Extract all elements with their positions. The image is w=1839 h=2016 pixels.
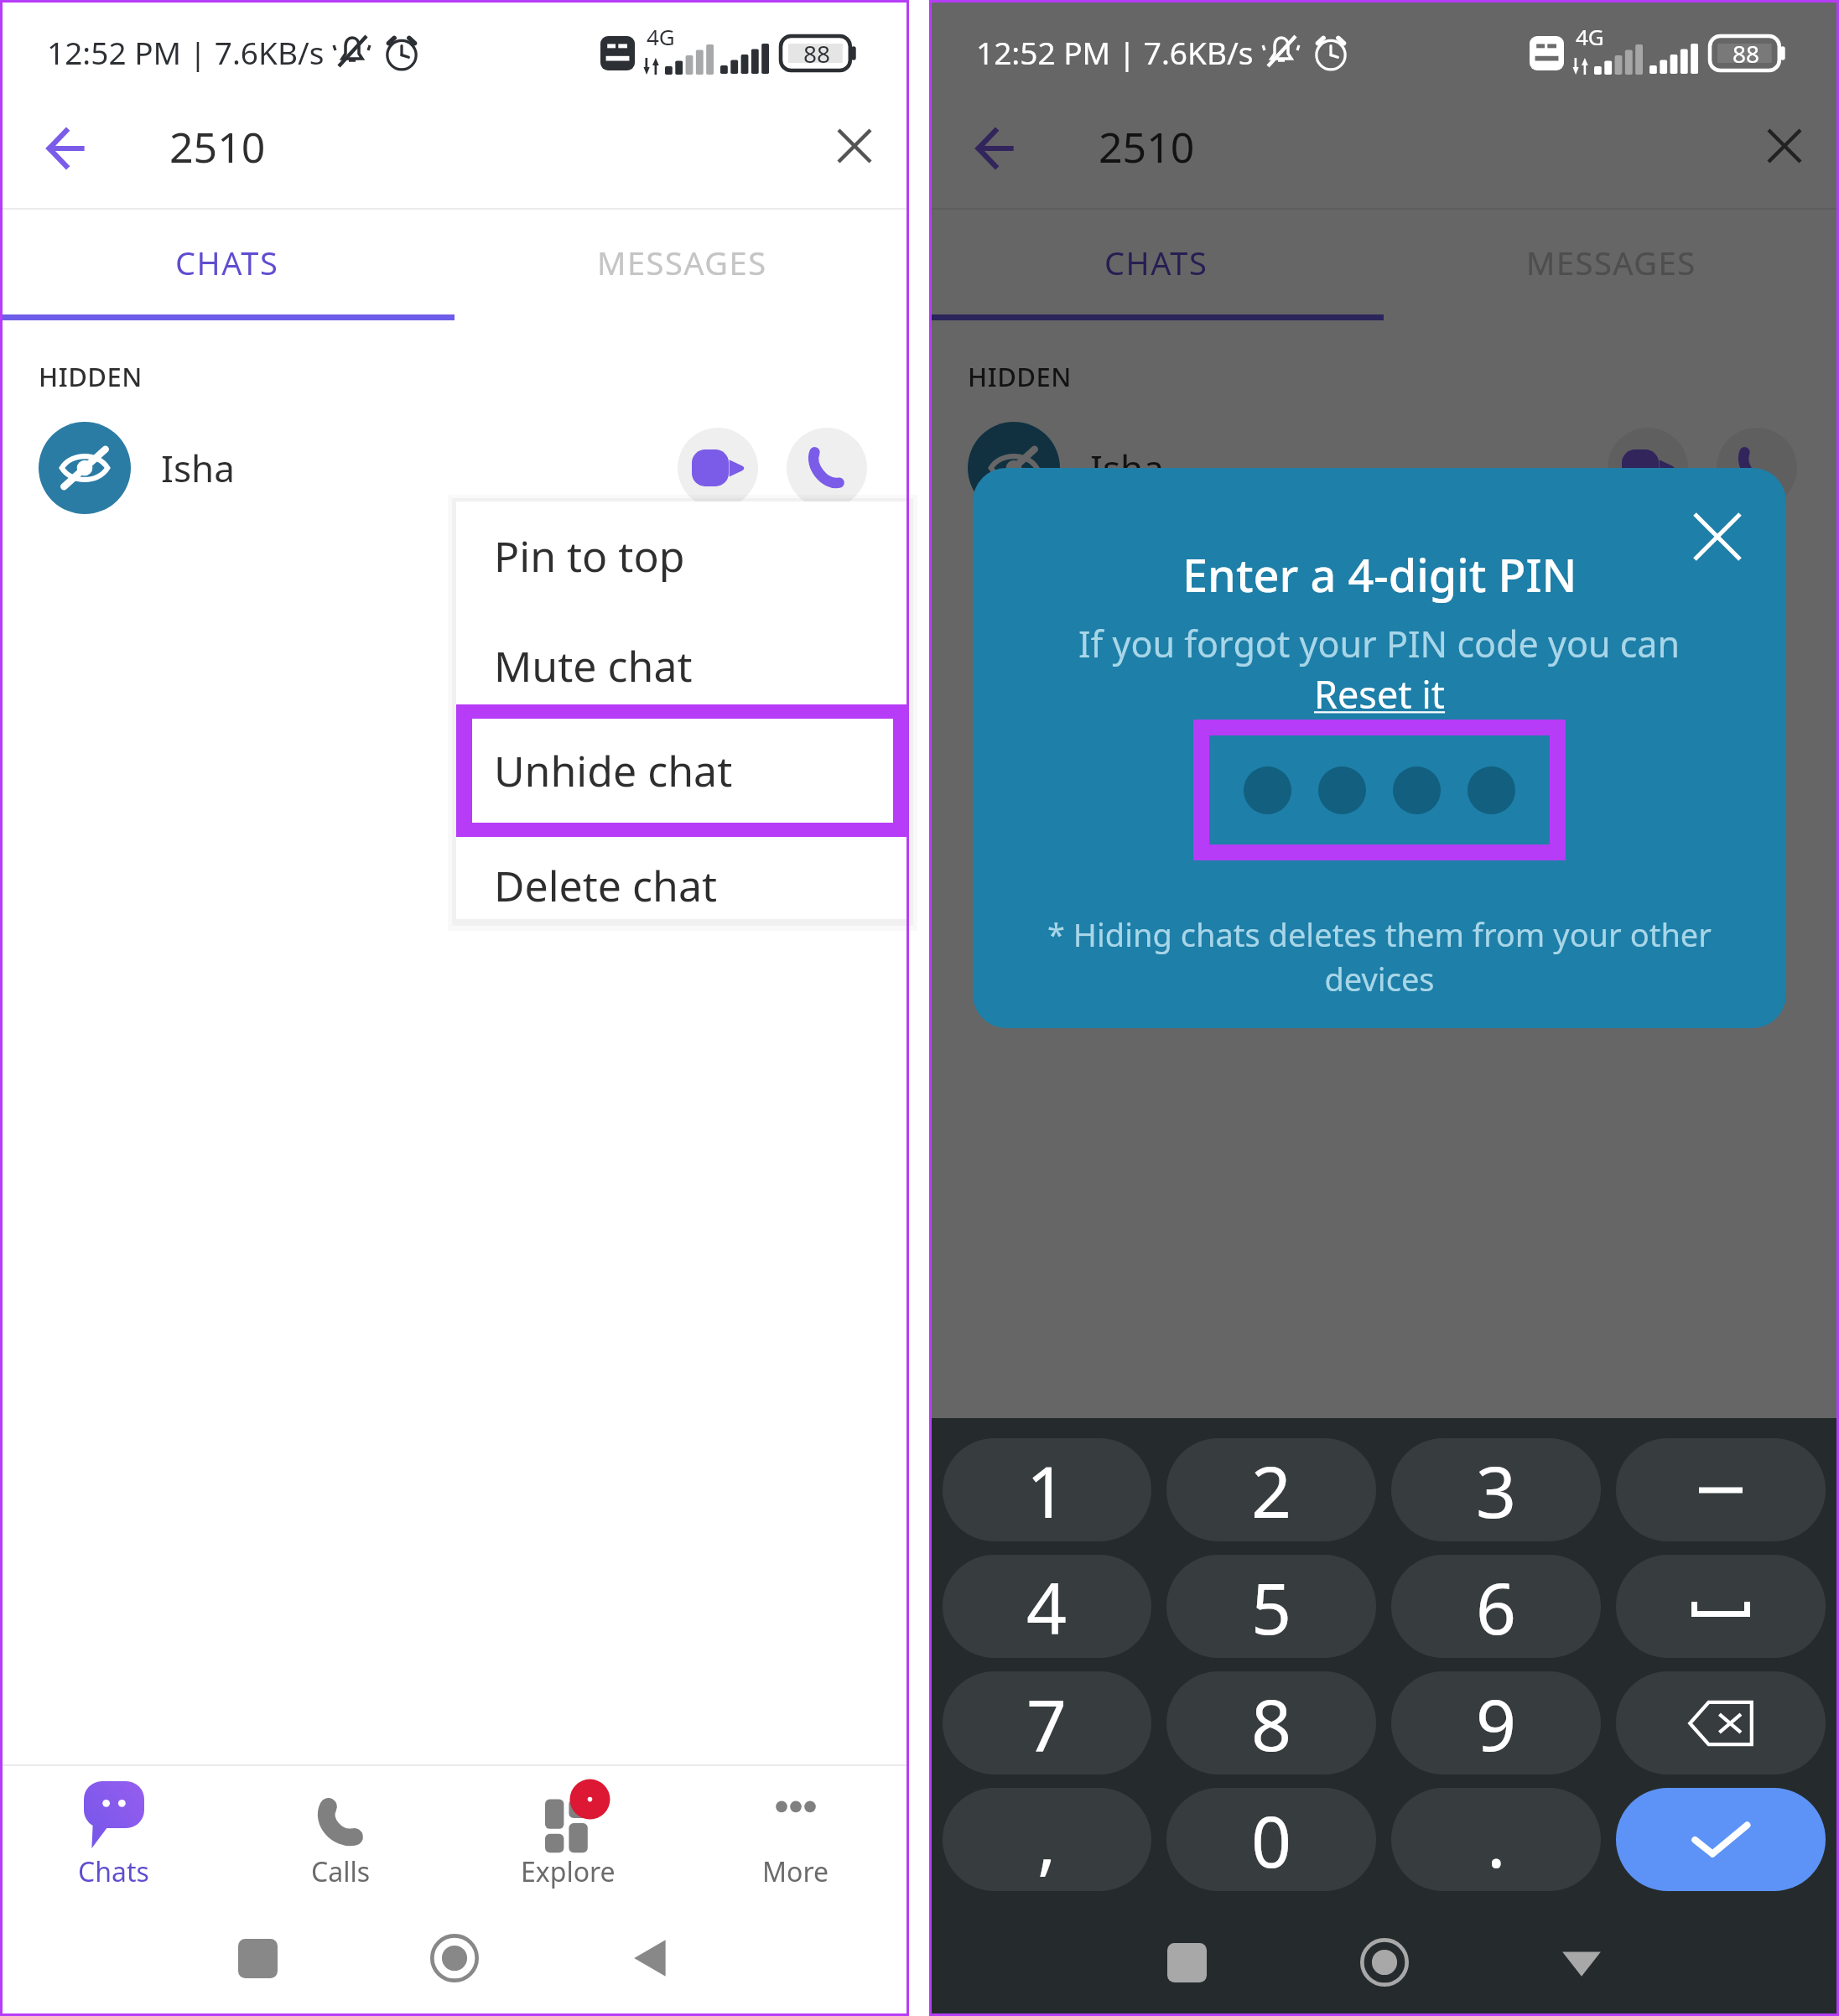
button[interactable]: . <box>1391 1788 1601 1891</box>
button[interactable]: MESSAGES <box>1384 210 1839 314</box>
button[interactable]: Recents <box>220 1920 295 1996</box>
staticText: MESSAGES <box>1526 241 1696 284</box>
staticText: 88 <box>803 38 831 70</box>
button[interactable]: Recents <box>1149 1925 1224 2000</box>
button[interactable]: 1 <box>943 1438 1151 1541</box>
button[interactable]: Back <box>958 111 1033 186</box>
staticText: 88 <box>1733 38 1760 70</box>
button[interactable]: 2 <box>1166 1438 1376 1541</box>
staticText: 7 <box>1026 1676 1068 1771</box>
staticText: 8 <box>1251 1676 1292 1771</box>
staticText: . <box>1487 1792 1506 1888</box>
button[interactable]: Back <box>29 111 104 186</box>
button[interactable]: Clear search <box>1747 108 1822 184</box>
staticText: CHATS <box>175 241 279 284</box>
button[interactable]: 8 <box>1166 1671 1376 1774</box>
button[interactable]: Chats <box>0 1766 227 1890</box>
button[interactable]: Mute chat <box>456 616 909 716</box>
staticText: If you forgot your PIN code you can <box>1078 619 1681 668</box>
staticText: 12:52 PM | 7.6KB/s <box>976 31 1254 73</box>
button[interactable] <box>1616 1555 1826 1658</box>
button[interactable]: Home <box>417 1920 492 1996</box>
staticText: MESSAGES <box>597 241 767 284</box>
button[interactable] <box>1616 1788 1826 1891</box>
button[interactable]: 3 <box>1391 1438 1601 1541</box>
staticText: 0 <box>1251 1792 1292 1888</box>
staticText: CHATS <box>1104 241 1208 284</box>
button[interactable]: Delete chat <box>456 835 909 936</box>
staticText: 2510 <box>1099 118 1195 175</box>
button[interactable]: More <box>682 1766 909 1890</box>
staticText: 1 <box>1026 1442 1068 1538</box>
button[interactable]: Pin to top <box>456 506 909 606</box>
button[interactable]: CHATS <box>929 210 1384 314</box>
button[interactable]: Calls <box>227 1766 455 1890</box>
staticText: Mute chat <box>494 637 693 694</box>
staticText: 6 <box>1476 1559 1517 1655</box>
staticText: Isha <box>1090 443 1164 493</box>
staticText: Unhide chat <box>494 742 733 799</box>
button[interactable] <box>1616 1438 1826 1541</box>
staticText: Delete chat <box>494 857 718 914</box>
staticText: Pin to top <box>494 527 685 585</box>
staticText: , <box>1037 1792 1057 1888</box>
staticText: Chats <box>78 1853 149 1890</box>
button[interactable]: Unhide chat <box>472 719 893 823</box>
staticText: 4G <box>1576 22 1604 51</box>
button[interactable]: Isha <box>929 394 1839 542</box>
button[interactable]: Isha <box>0 394 909 542</box>
button[interactable]: Clear search <box>817 108 892 184</box>
staticText: 3 <box>1476 1442 1517 1538</box>
button[interactable]: Video call <box>1608 428 1688 508</box>
button[interactable]: Explore <box>455 1766 682 1890</box>
staticText: 5 <box>1251 1559 1292 1655</box>
button[interactable]: , <box>943 1788 1151 1891</box>
button[interactable]: CHATS <box>0 210 455 314</box>
button[interactable]: Hide keyboard <box>1544 1925 1619 2000</box>
button[interactable]: MESSAGES <box>455 210 909 314</box>
staticText: Explore <box>521 1853 616 1890</box>
button[interactable] <box>1616 1671 1826 1774</box>
button[interactable]: Voice call <box>787 428 867 508</box>
staticText: 2510 <box>169 118 266 175</box>
staticText: 2 <box>1251 1442 1292 1538</box>
button[interactable]: Back <box>614 1920 689 1996</box>
staticText: * Hiding chats deletes them from your ot… <box>1047 912 1712 1000</box>
button[interactable]: Video call <box>678 428 758 508</box>
staticText: 4 <box>1026 1559 1068 1655</box>
button[interactable]: Reset it <box>1314 668 1446 720</box>
staticText: More <box>762 1853 829 1890</box>
button[interactable]: 0 <box>1166 1788 1376 1891</box>
button[interactable]: Close <box>1686 505 1749 569</box>
button[interactable]: 6 <box>1391 1555 1601 1658</box>
staticText: 9 <box>1476 1676 1517 1771</box>
button[interactable]: Voice call <box>1717 428 1797 508</box>
button[interactable]: 4 <box>943 1555 1151 1658</box>
button[interactable]: 5 <box>1166 1555 1376 1658</box>
button[interactable]: Home <box>1347 1925 1422 2000</box>
staticText: Isha <box>161 443 235 493</box>
staticText: Enter a 4-digit PIN <box>1182 543 1577 605</box>
staticText: HIDDEN <box>968 359 1072 394</box>
staticText: 4G <box>647 22 675 51</box>
staticText: Calls <box>311 1853 371 1890</box>
button[interactable]: 9 <box>1391 1671 1601 1774</box>
button[interactable]: 7 <box>943 1671 1151 1774</box>
staticText: HIDDEN <box>39 359 143 394</box>
staticText: 12:52 PM | 7.6KB/s <box>47 31 325 73</box>
